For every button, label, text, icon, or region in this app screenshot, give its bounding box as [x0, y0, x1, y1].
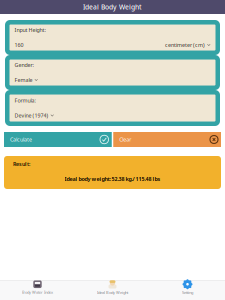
button[interactable]: centimeter (cm)	[165, 41, 210, 49]
staticText: Formula:	[14, 97, 35, 104]
button[interactable]: Ideal Body Weight	[75, 281, 150, 300]
button[interactable]: Female	[14, 76, 38, 84]
staticText: Devine (1974)	[14, 112, 48, 119]
staticText: Result:	[13, 160, 30, 167]
staticText: centimeter (cm)	[165, 41, 205, 49]
staticText: Body Water Index	[22, 290, 53, 295]
button[interactable]: Clear	[113, 132, 221, 147]
staticText: Ideal Body Weight	[83, 3, 142, 11]
staticText: Calculate	[10, 136, 32, 143]
staticText: Setting	[182, 290, 193, 295]
staticText: Ideal Body Weight	[97, 290, 128, 295]
button[interactable]: Calculate	[4, 132, 112, 147]
staticText: Gender:	[14, 61, 33, 68]
button[interactable]: Devine (1974)	[14, 112, 54, 119]
staticText: 160	[14, 41, 23, 49]
staticText: Ideal body weight: 52.38 kg./ 115.48 lbs	[64, 175, 160, 183]
staticText: Input Height:	[14, 26, 45, 33]
staticText: Clear	[119, 136, 131, 143]
staticText: Female	[14, 76, 32, 84]
button[interactable]: Body Water Index	[0, 281, 75, 300]
button[interactable]: Setting	[150, 281, 225, 300]
